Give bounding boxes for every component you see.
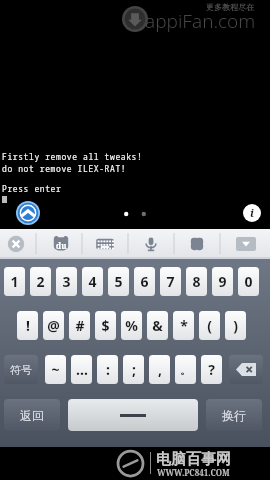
button[interactable]: $ [95,311,116,340]
button[interactable]: 返回 [4,399,60,431]
button[interactable]: 4 [82,267,103,296]
staticText: appiFan.com [145,8,256,34]
staticText: % [125,316,138,335]
staticText: 1 [10,272,19,291]
button[interactable]: More [187,234,207,254]
staticText: , [158,360,162,379]
staticText: : [106,360,110,379]
button[interactable]: 3 [56,267,77,296]
staticText: 电脑百事网 [156,450,231,469]
button[interactable]: ) [225,311,246,340]
button[interactable]: Baidu input [52,235,70,253]
button[interactable]: : [97,355,118,384]
button[interactable]: Space [68,399,198,431]
button[interactable]: 7 [160,267,181,296]
button[interactable]: @ [43,311,64,340]
staticText: ~ [51,360,60,379]
staticText: Firstly remove all tweaks! [2,151,143,162]
button[interactable]: # [69,311,90,340]
staticText: ; [132,360,136,379]
staticText: 。 [180,363,191,377]
button[interactable]: ? [201,355,222,384]
button[interactable]: … [71,355,92,384]
button[interactable]: 8 [186,267,207,296]
button[interactable]: 1 [4,267,25,296]
staticText: 3 [62,272,71,291]
button[interactable]: ! [17,311,38,340]
staticText: WWW.PC841.COM [157,467,230,478]
staticText: 返回 [20,408,44,423]
staticText: … [76,360,88,379]
staticText: 5 [114,272,123,291]
staticText: @ [47,316,60,335]
staticText: 0 [244,272,253,291]
button[interactable]: 6 [134,267,155,296]
button[interactable]: 。 [175,355,196,384]
button[interactable]: & [147,311,168,340]
staticText: 更多教程尽在 [206,2,254,12]
button[interactable]: * [173,311,194,340]
button[interactable]: % [121,311,142,340]
button[interactable]: 0 [238,267,259,296]
button[interactable]: ( [199,311,220,340]
staticText: do not remove ILEX-RAT! [2,163,127,174]
staticText: $ [101,316,110,335]
button[interactable]: , [149,355,170,384]
button[interactable]: 符号 [4,355,38,384]
staticText: 8 [192,272,201,291]
button[interactable]: Backspace [229,355,263,384]
button[interactable]: Voice input [141,234,161,254]
staticText: du [56,240,67,251]
button[interactable]: 9 [212,267,233,296]
button[interactable]: Info [243,204,261,222]
staticText: 7 [166,272,175,291]
staticText: ( [207,316,212,335]
button[interactable]: 5 [108,267,129,296]
staticText: 2 [36,272,45,291]
staticText: 6 [140,272,149,291]
staticText: # [75,316,85,335]
staticText: Press enter [2,183,62,194]
button[interactable]: Scroll up [16,201,40,225]
staticText: 4 [88,272,97,291]
staticText: ) [233,316,238,335]
staticText: & [152,316,163,335]
staticText: ? [208,360,215,379]
button[interactable]: Keyboard [95,234,115,254]
staticText: 9 [218,272,227,291]
button[interactable]: Close [6,234,26,254]
button[interactable]: 换行 [206,399,262,431]
staticText: * [180,316,188,335]
button[interactable]: ~ [45,355,66,384]
staticText: 换行 [222,408,246,423]
button[interactable]: 2 [30,267,51,296]
staticText: 符号 [10,363,32,377]
staticText: i [250,205,254,220]
button[interactable]: ; [123,355,144,384]
staticText: ! [26,316,30,335]
button[interactable]: Hide keyboard [236,237,256,251]
